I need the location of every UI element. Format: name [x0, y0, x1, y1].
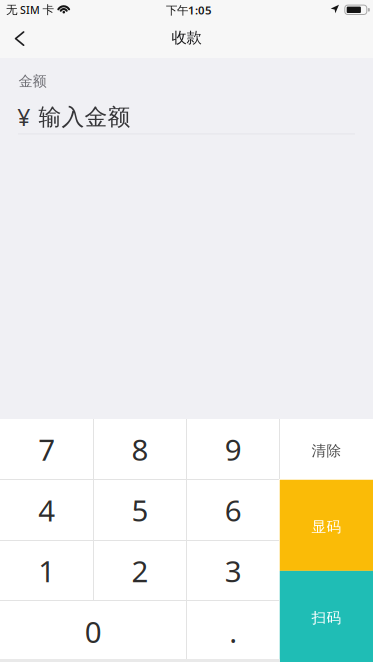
button[interactable]: 1	[0, 540, 93, 601]
staticText: 3	[225, 551, 242, 591]
staticText: .	[229, 611, 237, 652]
button[interactable]: Back	[0, 20, 38, 58]
button[interactable]: 9	[186, 419, 280, 480]
staticText: 9	[225, 429, 242, 469]
button[interactable]: 扫码	[280, 571, 373, 662]
staticText: 卡	[42, 3, 54, 17]
staticText: ¥	[17, 101, 30, 133]
staticText: 6	[225, 490, 242, 530]
button[interactable]: 5	[93, 480, 186, 541]
button[interactable]: 8	[93, 419, 186, 480]
button[interactable]: 显码	[280, 480, 373, 571]
staticText: 4	[38, 490, 55, 530]
staticText: 7	[38, 429, 55, 469]
staticText: 清除	[311, 442, 341, 460]
staticText: 输入金额	[39, 103, 131, 131]
button[interactable]: 3	[186, 540, 280, 601]
staticText: 1	[38, 551, 55, 591]
staticText: 0	[85, 611, 102, 652]
staticText: 扫码	[311, 609, 341, 627]
staticText: 收款	[171, 28, 201, 47]
staticText: 8	[131, 429, 148, 469]
button[interactable]: .	[186, 601, 280, 662]
button[interactable]: 0	[0, 601, 186, 662]
staticText: SIM	[20, 3, 40, 17]
staticText: 5	[131, 490, 148, 530]
button[interactable]: 4	[0, 480, 93, 541]
staticText: 无	[6, 3, 18, 17]
staticText: 显码	[311, 518, 341, 536]
button[interactable]: 2	[93, 540, 186, 601]
staticText: 金额	[18, 72, 46, 90]
button[interactable]: 7	[0, 419, 93, 480]
button[interactable]: 清除	[280, 419, 373, 480]
staticText: 下午1:05	[166, 2, 212, 18]
staticText: 2	[131, 551, 148, 591]
button[interactable]: 6	[186, 480, 280, 541]
